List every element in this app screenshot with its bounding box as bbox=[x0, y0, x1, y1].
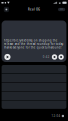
staticText: https://bit.ly/4x9dmq on shipping the re… bbox=[4, 39, 64, 49]
staticText: 0:42 bbox=[43, 55, 50, 59]
button[interactable]: Share bbox=[58, 54, 64, 60]
button[interactable]: Play bbox=[4, 53, 11, 61]
staticText: ••• bbox=[60, 8, 63, 11]
staticText: Real OG bbox=[28, 8, 40, 11]
button[interactable]: Account bbox=[2, 5, 10, 13]
button[interactable]: More options bbox=[58, 5, 66, 13]
button[interactable]: Like bbox=[51, 54, 58, 60]
staticText: 12:04 bbox=[51, 114, 60, 118]
